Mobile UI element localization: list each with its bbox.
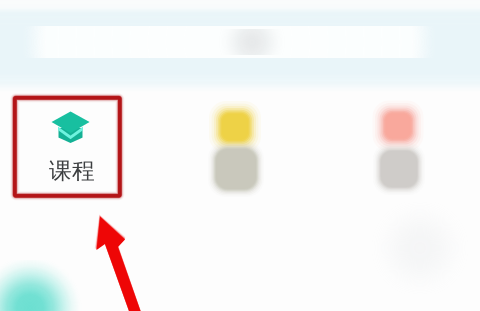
staticText: 课程 bbox=[49, 157, 95, 185]
button[interactable]: 课程 bbox=[13, 96, 120, 196]
